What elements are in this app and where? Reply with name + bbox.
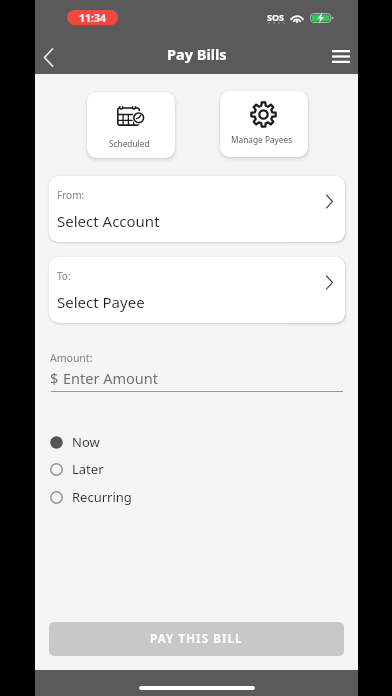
staticText: To: [57,269,71,283]
button[interactable]: To: [49,257,345,323]
staticText: Pay Bills [167,44,227,64]
button[interactable]: From: [49,176,345,242]
button[interactable]: Scheduled [87,92,175,158]
staticText: Manage Payees [231,134,293,145]
staticText: Select Account [57,211,160,231]
staticText: $ [50,368,59,388]
button[interactable]: Manage Payees [220,91,308,157]
staticText: From: [57,188,85,202]
staticText: Enter Amount [63,368,158,388]
staticText: PAY THIS BILL [150,631,243,647]
button[interactable]: PAY THIS BILL [49,622,344,656]
staticText: Scheduled [109,138,150,149]
button[interactable]: Now [50,433,100,451]
button[interactable]: Back [35,41,61,73]
staticText: Amount: [50,351,93,365]
staticText: Select Payee [57,292,145,312]
button[interactable]: Later [50,460,104,478]
staticText: SOS [267,11,285,23]
staticText: Now [72,433,100,451]
staticText: Recurring [72,488,132,506]
button[interactable]: Recurring [50,488,132,506]
staticText: Later [72,460,104,478]
button[interactable]: Menu [325,40,357,72]
staticText: 11:34 [79,11,106,25]
